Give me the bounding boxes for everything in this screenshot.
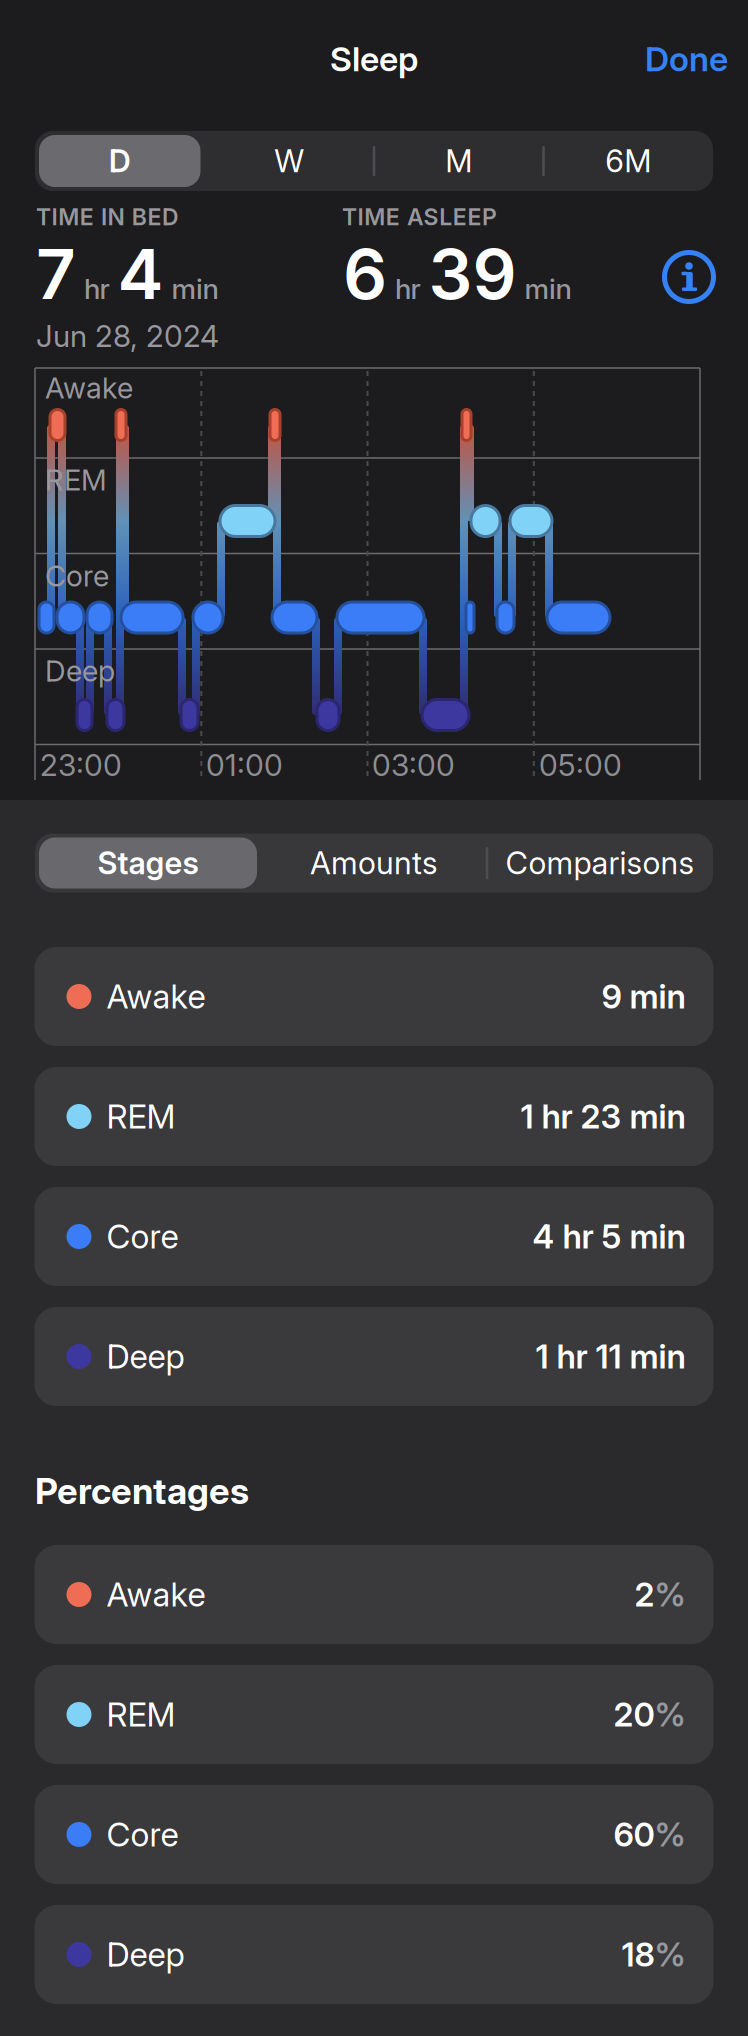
staticText: 7 — [36, 232, 76, 316]
staticText: Core — [45, 558, 109, 594]
staticText: TIME ASLEEP — [342, 203, 497, 231]
button[interactable]: 6M — [543, 131, 713, 191]
staticText: Awake — [45, 370, 133, 406]
staticText: REM — [106, 1694, 175, 1734]
staticText: D — [109, 142, 131, 180]
button[interactable]: D — [35, 131, 204, 191]
staticText: Done — [645, 38, 728, 79]
button[interactable]: W — [204, 131, 374, 191]
staticText: Core — [106, 1216, 178, 1256]
staticText: REM — [45, 462, 107, 498]
staticText: W — [274, 142, 304, 180]
button[interactable]: M — [374, 131, 543, 191]
staticText: TIME IN BED — [36, 203, 179, 231]
button[interactable]: Done — [588, 24, 728, 94]
staticText: hr — [84, 272, 109, 306]
staticText: Jun 28, 2024 — [36, 318, 219, 354]
staticText: Awake — [106, 976, 205, 1016]
staticText: min — [524, 272, 571, 306]
staticText: 39 — [428, 232, 516, 316]
staticText: Deep — [106, 1336, 184, 1376]
button[interactable]: More information — [661, 249, 717, 305]
staticText: Awake — [106, 1574, 205, 1614]
staticText: % — [654, 1814, 685, 1854]
staticText: 4 — [117, 232, 163, 316]
staticText: 2 — [634, 1574, 654, 1614]
staticText: Core — [106, 1814, 178, 1854]
staticText: 05:00 — [539, 747, 622, 783]
staticText: 9 min — [601, 976, 685, 1016]
button[interactable]: Comparisons — [487, 833, 713, 892]
staticText: 1 hr 23 min — [520, 1096, 685, 1136]
staticText: 4 hr 5 min — [532, 1216, 685, 1256]
staticText: Stages — [97, 844, 198, 882]
staticText: min — [171, 272, 218, 306]
staticText: Percentages — [35, 1469, 249, 1513]
staticText: 20 — [613, 1694, 654, 1734]
staticText: 18 — [621, 1934, 654, 1974]
staticText: REM — [106, 1096, 175, 1136]
staticText: Deep — [106, 1934, 184, 1974]
staticText: 6 — [343, 232, 387, 316]
staticText: 03:00 — [372, 747, 455, 783]
staticText: Amounts — [310, 844, 438, 882]
staticText: 23:00 — [40, 747, 122, 783]
staticText: 01:00 — [206, 747, 283, 783]
staticText: hr — [395, 272, 420, 306]
staticText: % — [654, 1694, 685, 1734]
staticText: 1 hr 11 min — [535, 1336, 685, 1376]
staticText: % — [654, 1934, 685, 1974]
staticText: % — [654, 1574, 685, 1614]
button[interactable]: Amounts — [261, 833, 487, 892]
staticText: M — [445, 142, 472, 180]
button[interactable]: Stages — [35, 833, 261, 892]
staticText: 60 — [613, 1814, 654, 1854]
staticText: Deep — [45, 653, 115, 689]
staticText: 6M — [605, 142, 651, 180]
staticText: Sleep — [330, 38, 418, 79]
staticText: Comparisons — [505, 844, 694, 882]
